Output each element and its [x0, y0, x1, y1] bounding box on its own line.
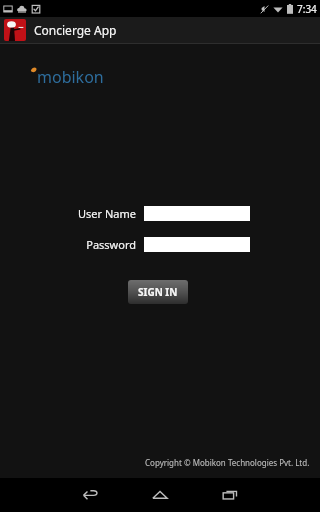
- other: Concierge App icon: [4, 19, 26, 41]
- staticText: User Name: [70, 206, 136, 221]
- staticText: Concierge App: [34, 22, 117, 38]
- button[interactable]: Home: [136, 478, 184, 512]
- button[interactable]: Back: [66, 478, 114, 512]
- staticText: 7:34: [297, 2, 317, 16]
- staticText: Copyright © Mobikon Technologies Pvt. Lt…: [145, 457, 310, 468]
- button[interactable]: Recent apps: [206, 478, 254, 512]
- staticText: mobikon: [37, 66, 104, 88]
- staticText: SIGN IN: [138, 285, 178, 299]
- staticText: Password: [70, 237, 136, 252]
- button[interactable]: SIGN IN: [128, 280, 188, 304]
